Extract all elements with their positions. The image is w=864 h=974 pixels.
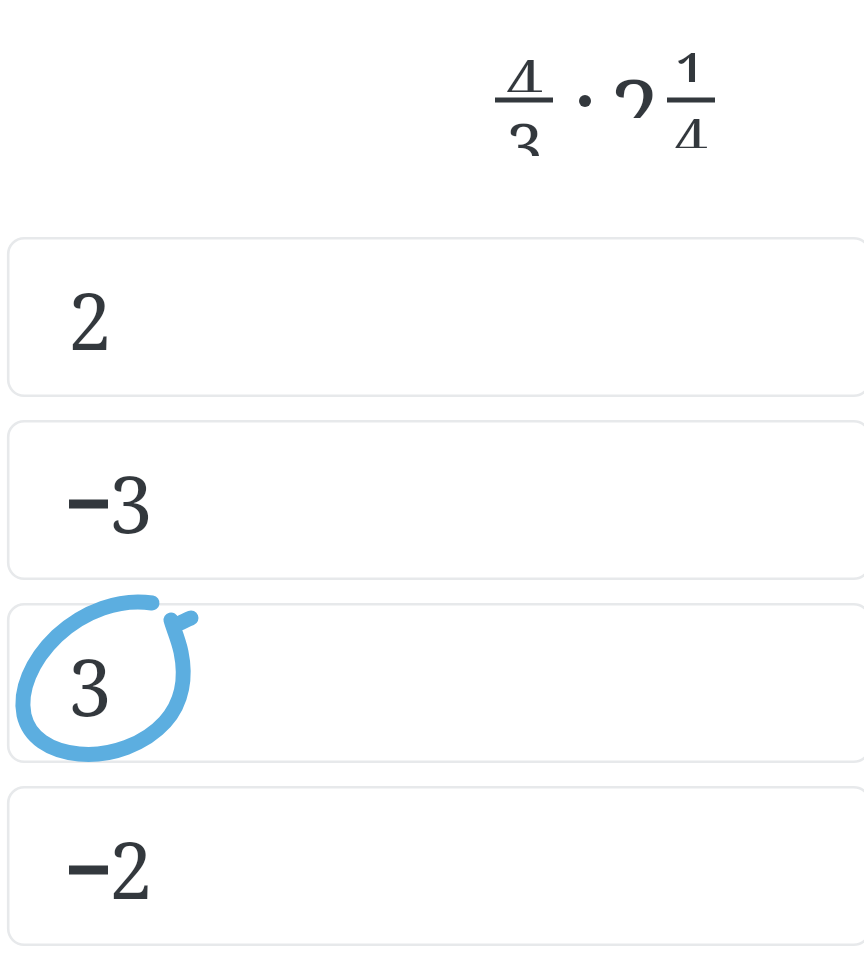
button[interactable]: 2 bbox=[7, 786, 864, 946]
button[interactable]: 3 bbox=[7, 603, 864, 763]
button[interactable]: 2 bbox=[7, 237, 864, 397]
staticText: 4 bbox=[674, 98, 708, 148]
staticText: 3 bbox=[68, 633, 112, 733]
staticText: 3 bbox=[506, 100, 543, 156]
staticText: 2 bbox=[68, 267, 112, 367]
staticText: 3 bbox=[109, 450, 153, 550]
staticText: 2 bbox=[609, 48, 661, 118]
staticText: 4 bbox=[506, 36, 543, 92]
staticText: 1 bbox=[674, 32, 708, 82]
other: Handwritten circle marking the answer 3 bbox=[0, 0, 864, 974]
staticText: 2 bbox=[109, 816, 153, 916]
button[interactable]: 3 bbox=[7, 420, 864, 580]
